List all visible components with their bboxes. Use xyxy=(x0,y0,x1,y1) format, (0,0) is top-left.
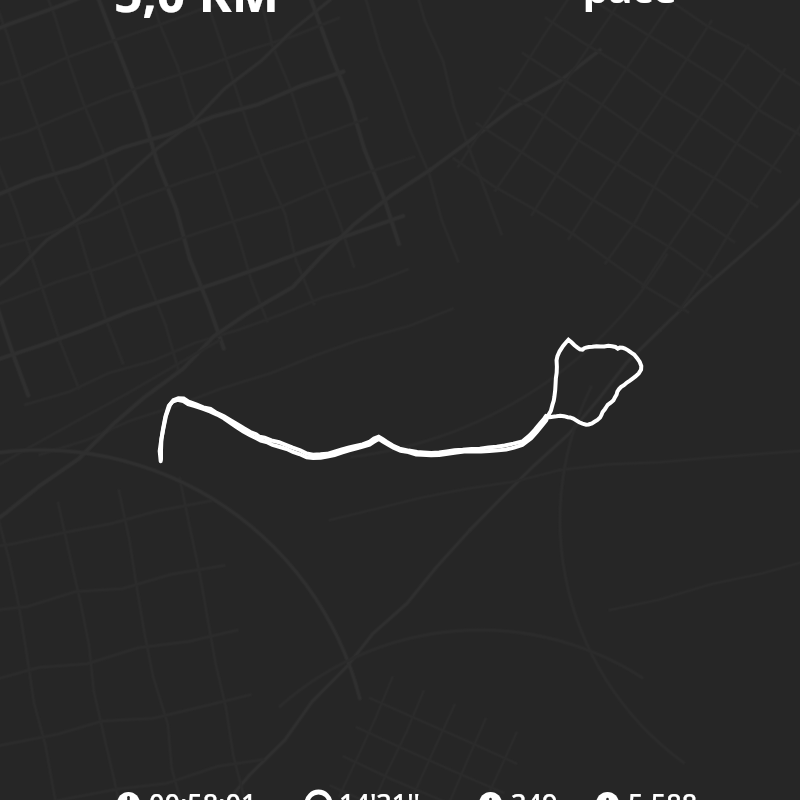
staticText: 5.588 xyxy=(628,785,698,800)
staticText: 14'31'' xyxy=(339,785,420,800)
button[interactable]: Calories xyxy=(479,785,558,800)
button[interactable]: Steps xyxy=(596,785,698,800)
staticText: 5,0 KM xyxy=(114,0,279,27)
staticText: pace xyxy=(583,0,677,14)
button[interactable]: Average pace xyxy=(307,785,420,800)
staticText: 349 xyxy=(511,785,558,800)
staticText: 00:58:01 xyxy=(149,785,257,800)
button[interactable]: Duration xyxy=(117,785,257,800)
